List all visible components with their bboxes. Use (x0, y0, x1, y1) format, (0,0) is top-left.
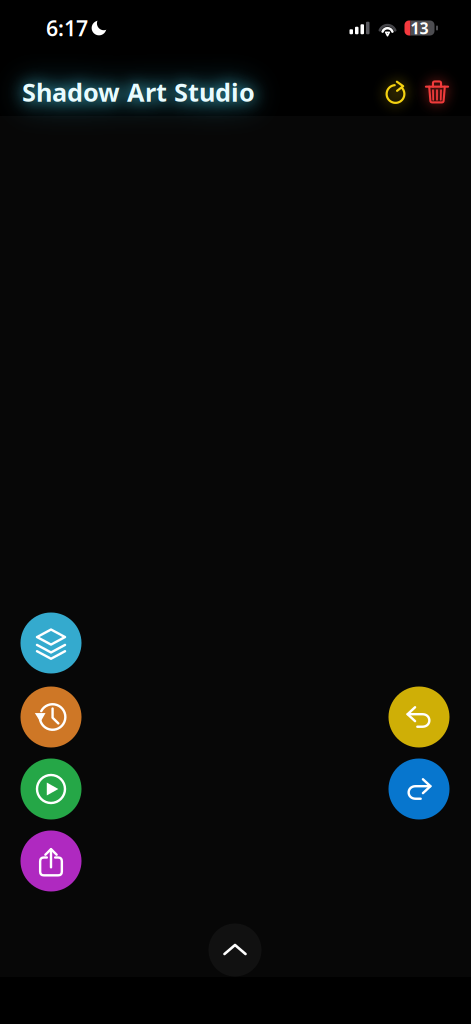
button[interactable]: Redo (388, 758, 449, 819)
button[interactable]: Refresh (377, 70, 417, 114)
staticText: 6:17 (46, 14, 88, 42)
button[interactable]: Undo (388, 686, 449, 747)
button[interactable]: Share (20, 830, 81, 891)
staticText: Shadow Art Studio (22, 75, 255, 109)
staticText: 13 (410, 17, 428, 39)
button[interactable]: History (20, 686, 81, 747)
button[interactable]: Layers (20, 612, 81, 673)
button[interactable]: Delete all (417, 70, 457, 114)
button[interactable]: Play animation (20, 758, 81, 819)
button[interactable]: Show tools (208, 923, 261, 976)
